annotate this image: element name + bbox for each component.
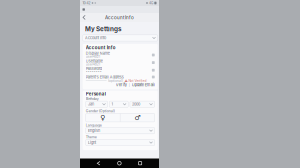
button[interactable]: Light	[86, 139, 155, 146]
button[interactable]: Male	[120, 113, 155, 122]
button[interactable]: Female	[86, 113, 120, 122]
staticText: Update Email	[132, 82, 155, 87]
button[interactable]: Jan	[86, 101, 108, 107]
staticText: Account Info	[86, 45, 116, 50]
button[interactable]: Menu	[82, 8, 85, 11]
staticText: ♂	[135, 114, 141, 122]
button[interactable]: Recents	[138, 162, 142, 165]
staticText: My Settings	[85, 25, 122, 33]
button[interactable]: Username	[83, 59, 158, 66]
staticText: 1	[111, 102, 113, 106]
staticText: Jan	[88, 102, 94, 106]
staticText: Username	[86, 59, 103, 63]
button[interactable]: English	[86, 127, 155, 134]
staticText: 4G	[149, 1, 153, 5]
staticText: 10:42	[82, 1, 90, 5]
staticText: Gender (Optional)	[86, 109, 115, 113]
button[interactable]: 1	[109, 101, 128, 107]
button[interactable]: Back	[80, 13, 89, 22]
button[interactable]: 2000	[130, 101, 155, 107]
staticText: Language	[86, 123, 102, 127]
button[interactable]: Verify	[116, 82, 127, 87]
staticText: Birthday	[86, 96, 99, 101]
staticText: (optional)	[108, 79, 123, 83]
staticText: Personal	[86, 91, 106, 97]
staticText: Password	[86, 66, 102, 71]
staticText: ••••••••	[86, 70, 102, 74]
button[interactable]: Back	[97, 161, 100, 165]
staticText: Light	[88, 140, 96, 145]
staticText: |	[127, 83, 132, 87]
staticText: Account Info	[85, 36, 106, 40]
staticText: Account Info	[105, 15, 134, 20]
button[interactable]: Home	[118, 161, 121, 165]
button[interactable]: Update Email	[132, 82, 155, 87]
staticText: Display Name	[86, 51, 110, 56]
button[interactable]: Password	[83, 66, 158, 74]
staticText: Verify	[116, 82, 127, 87]
staticText: 2000	[132, 102, 140, 106]
button[interactable]: Account Info	[83, 35, 158, 41]
staticText: English	[88, 128, 100, 133]
button[interactable]: Display Name	[83, 51, 158, 59]
staticText: Parent's Email Address	[86, 75, 124, 79]
staticText: ⚠ Not Verified	[124, 79, 146, 83]
staticText: user4821	[86, 54, 100, 59]
staticText: ♀	[100, 114, 105, 122]
staticText: user4821	[86, 62, 100, 66]
staticText: Theme	[86, 135, 97, 139]
